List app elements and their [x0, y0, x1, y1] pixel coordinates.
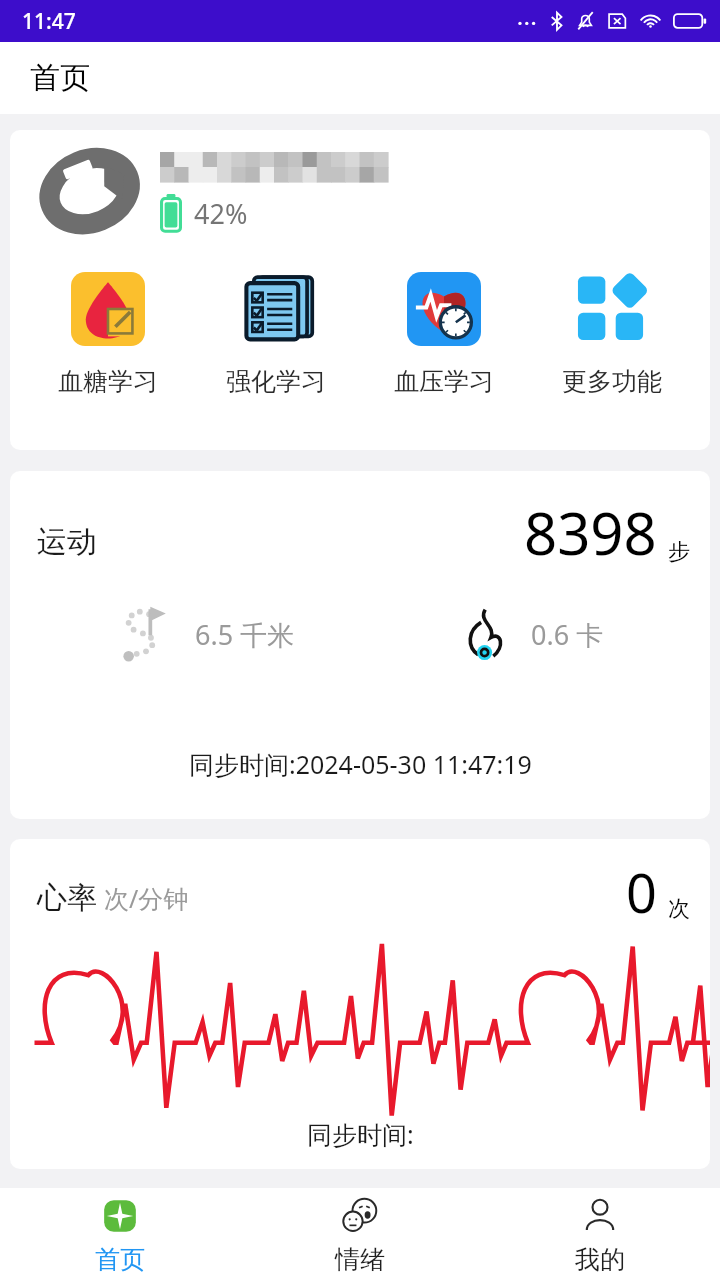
- staticText: 首页: [30, 59, 90, 97]
- button[interactable]: 血压学习: [374, 268, 514, 401]
- button[interactable]: 我的: [480, 1188, 720, 1280]
- staticText: 8398: [524, 493, 657, 572]
- staticText: 6.5 千米: [195, 616, 295, 653]
- staticText: 次/分钟: [104, 881, 189, 915]
- staticText: 42%: [194, 195, 248, 232]
- staticText: 我的: [575, 1244, 625, 1275]
- button[interactable]: 42%: [10, 130, 710, 450]
- staticText: 同步时间:2024-05-30 11:47:19: [189, 747, 532, 781]
- button[interactable]: 心率: [10, 839, 710, 1169]
- button[interactable]: 首页: [0, 1188, 240, 1280]
- staticText: 0.6 卡: [531, 616, 604, 653]
- staticText: 血糖学习: [58, 366, 158, 397]
- staticText: 0: [626, 855, 657, 929]
- staticText: 情绪: [335, 1244, 385, 1275]
- button[interactable]: 运动: [10, 471, 710, 819]
- staticText: 步: [668, 538, 690, 566]
- staticText: 血压学习: [394, 366, 494, 397]
- button[interactable]: 强化学习: [206, 268, 346, 401]
- staticText: 心率: [37, 879, 97, 917]
- button[interactable]: 更多功能: [542, 268, 682, 401]
- staticText: 更多功能: [562, 366, 662, 397]
- staticText: 强化学习: [226, 366, 326, 397]
- staticText: 运动: [37, 523, 97, 561]
- staticText: 首页: [95, 1244, 145, 1275]
- staticText: 11:47: [22, 7, 76, 36]
- staticText: 次: [668, 895, 690, 923]
- staticText: 同步时间:: [307, 1117, 414, 1151]
- button[interactable]: 血糖学习: [38, 268, 178, 401]
- button[interactable]: 情绪: [240, 1188, 480, 1280]
